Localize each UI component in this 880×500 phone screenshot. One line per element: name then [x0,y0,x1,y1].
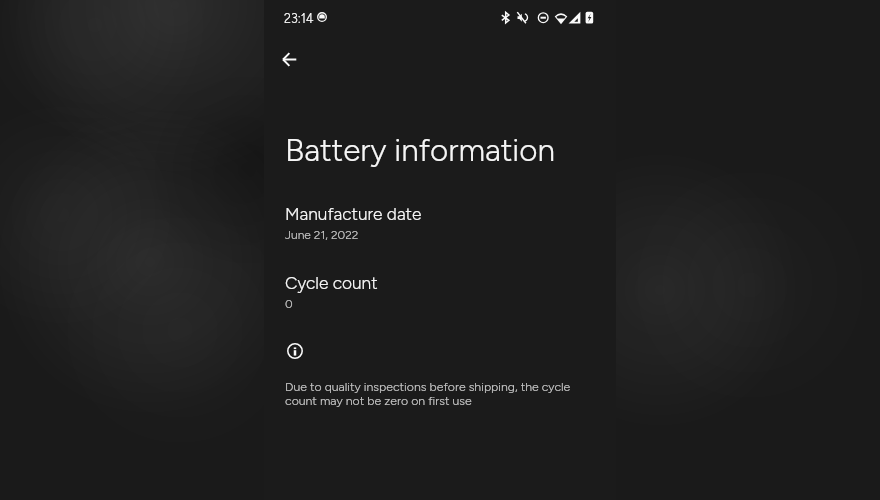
button[interactable]: Cycle count [264,265,616,315]
staticText: 23:14 [284,11,314,26]
other: Bluetooth, ringer off, do not disturb, W… [498,10,598,26]
staticText: Cycle count [285,273,378,294]
staticText: June 21, 2022 [285,228,359,242]
button[interactable]: Back [267,37,311,81]
staticText: 0 [285,297,293,311]
staticText: Due to quality inspections before shippi… [285,379,571,409]
staticText: Manufacture date [285,204,422,225]
staticText: Battery information [285,131,555,169]
button[interactable]: Manufacture date [264,196,616,246]
